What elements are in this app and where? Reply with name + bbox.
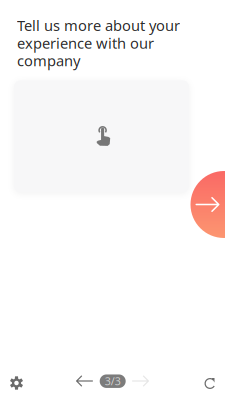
button[interactable]: Next question [127, 369, 153, 393]
button[interactable]: Next [190, 171, 225, 238]
staticText: 3/3 [105, 374, 121, 388]
staticText: Tell us more about your experience with … [17, 16, 180, 70]
button[interactable]: Previous question [71, 369, 97, 393]
button[interactable]: Restart [195, 368, 225, 398]
button[interactable]: Settings [1, 368, 31, 398]
